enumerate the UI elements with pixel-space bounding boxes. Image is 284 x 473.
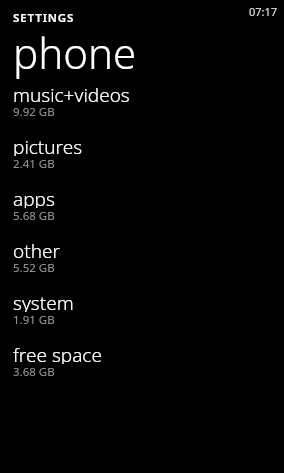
button[interactable]: apps: [13, 186, 284, 238]
button[interactable]: other: [13, 238, 284, 290]
staticText: free space: [13, 342, 102, 364]
button[interactable]: system: [13, 290, 284, 342]
staticText: 2.41 GB: [13, 156, 55, 172]
staticText: 5.68 GB: [13, 208, 55, 224]
staticText: other: [13, 238, 60, 260]
staticText: phone: [13, 24, 137, 80]
staticText: pictures: [13, 134, 83, 156]
staticText: apps: [13, 186, 55, 208]
button[interactable]: free space: [13, 342, 284, 394]
staticText: system: [13, 290, 74, 312]
button[interactable]: pictures: [13, 134, 284, 186]
staticText: SETTINGS: [13, 10, 75, 26]
staticText: 5.52 GB: [13, 260, 55, 276]
staticText: 9.92 GB: [13, 104, 55, 120]
staticText: 1.91 GB: [13, 312, 55, 328]
staticText: 3.68 GB: [13, 364, 55, 380]
staticText: music+videos: [13, 82, 130, 104]
staticText: 07:17: [248, 4, 277, 19]
button[interactable]: music+videos: [13, 82, 284, 134]
